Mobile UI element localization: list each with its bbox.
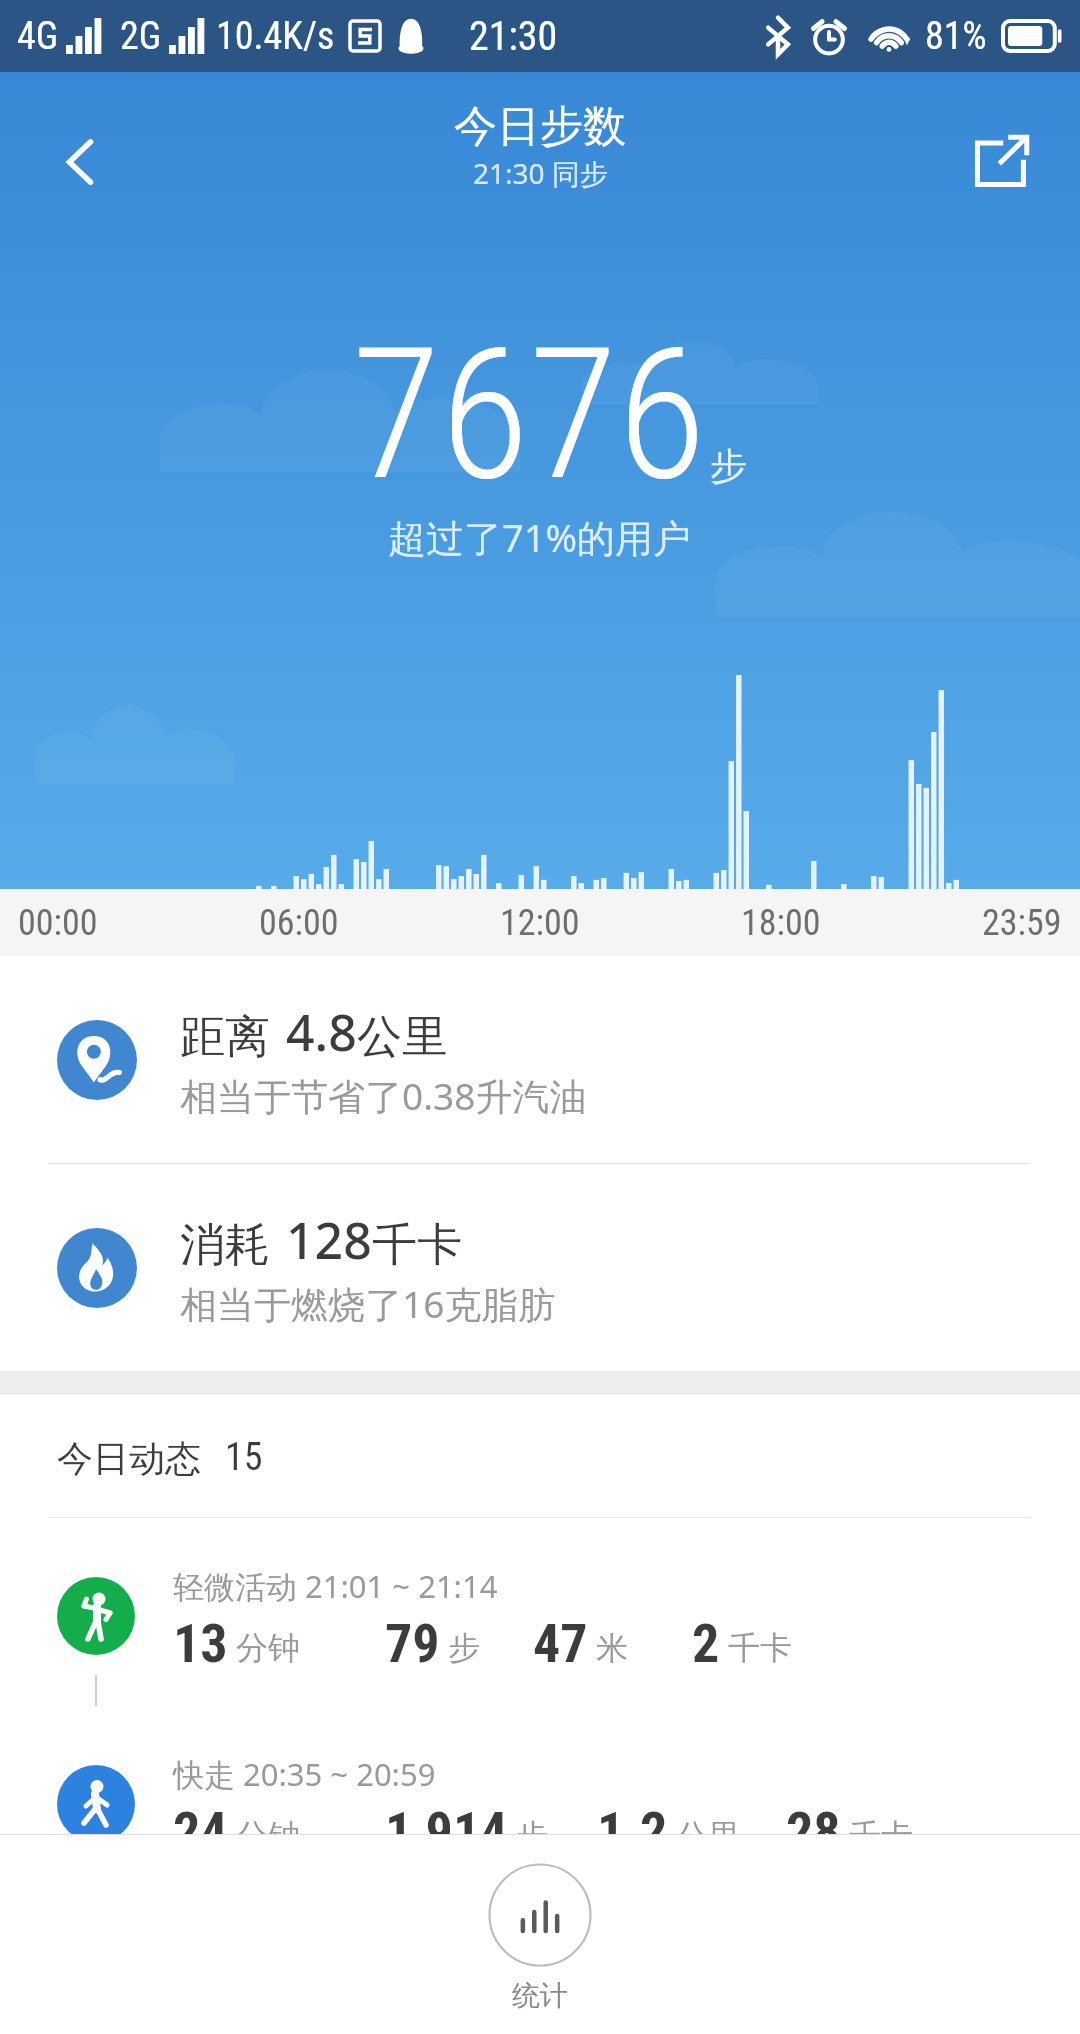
staticText: 79 <box>385 1612 440 1675</box>
staticText: 4.8 <box>286 998 357 1066</box>
staticText: 06:00 <box>259 902 339 944</box>
staticText: 米 <box>596 1628 628 1668</box>
staticText: 18:00 <box>741 902 821 944</box>
button[interactable]: Share <box>946 107 1056 217</box>
staticText: 21:30 同步 <box>473 154 608 192</box>
staticText: 距离 <box>180 1009 270 1066</box>
button[interactable]: 距离 <box>0 956 1080 1163</box>
staticText: 相当于燃烧了16克脂肪 <box>180 1278 556 1329</box>
staticText: 47 <box>533 1612 588 1675</box>
staticText: 统计 <box>512 1978 568 2013</box>
staticText: 分钟 <box>236 1628 300 1668</box>
staticText: 12:00 <box>500 902 580 944</box>
button[interactable]: 消耗 <box>0 1164 1080 1371</box>
staticText: 128 <box>286 1206 372 1274</box>
staticText: 步 <box>710 443 747 490</box>
staticText: 28 <box>786 1800 841 1863</box>
staticText: 公里 <box>357 1009 447 1066</box>
staticText: 公里 <box>676 1816 740 1856</box>
staticText: 相当于节省了0.38升汽油 <box>180 1070 587 1121</box>
staticText: 轻微活动 21:01 ~ 21:14 <box>173 1565 498 1607</box>
staticText: 今日步数 <box>454 100 626 154</box>
staticText: 24 <box>173 1800 228 1863</box>
staticText: 分钟 <box>236 1816 300 1856</box>
staticText: 2G <box>120 14 162 59</box>
staticText: 千卡 <box>728 1628 792 1668</box>
staticText: 1,914 <box>385 1800 508 1863</box>
staticText: 4G <box>17 14 59 59</box>
staticText: 今日动态 <box>57 1436 201 1481</box>
staticText: 7676 <box>352 308 707 521</box>
staticText: 81% <box>925 14 987 59</box>
staticText: 步 <box>448 1628 480 1668</box>
staticText: 步 <box>516 1816 548 1856</box>
staticText: 13 <box>173 1612 228 1675</box>
button[interactable]: 快走 20:35 ~ 20:59 <box>0 1706 1080 1894</box>
staticText: 千卡 <box>849 1816 913 1856</box>
staticText: 超过了71%的用户 <box>388 511 692 563</box>
staticText: 21:30 <box>469 13 558 60</box>
button[interactable]: Back <box>22 104 138 220</box>
staticText: 2 <box>692 1612 720 1675</box>
staticText: 千卡 <box>372 1217 462 1274</box>
staticText: 15 <box>225 1435 263 1480</box>
staticText: 消耗 <box>180 1217 270 1274</box>
button[interactable]: 统计 <box>488 1863 592 2013</box>
staticText: 1.2 <box>597 1800 668 1863</box>
staticText: 快走 20:35 ~ 20:59 <box>173 1753 436 1795</box>
staticText: 10.4K/s <box>216 14 335 59</box>
staticText: 00:00 <box>18 902 98 944</box>
staticText: 23:59 <box>982 902 1062 944</box>
button[interactable]: 轻微活动 21:01 ~ 21:14 <box>0 1518 1080 1706</box>
